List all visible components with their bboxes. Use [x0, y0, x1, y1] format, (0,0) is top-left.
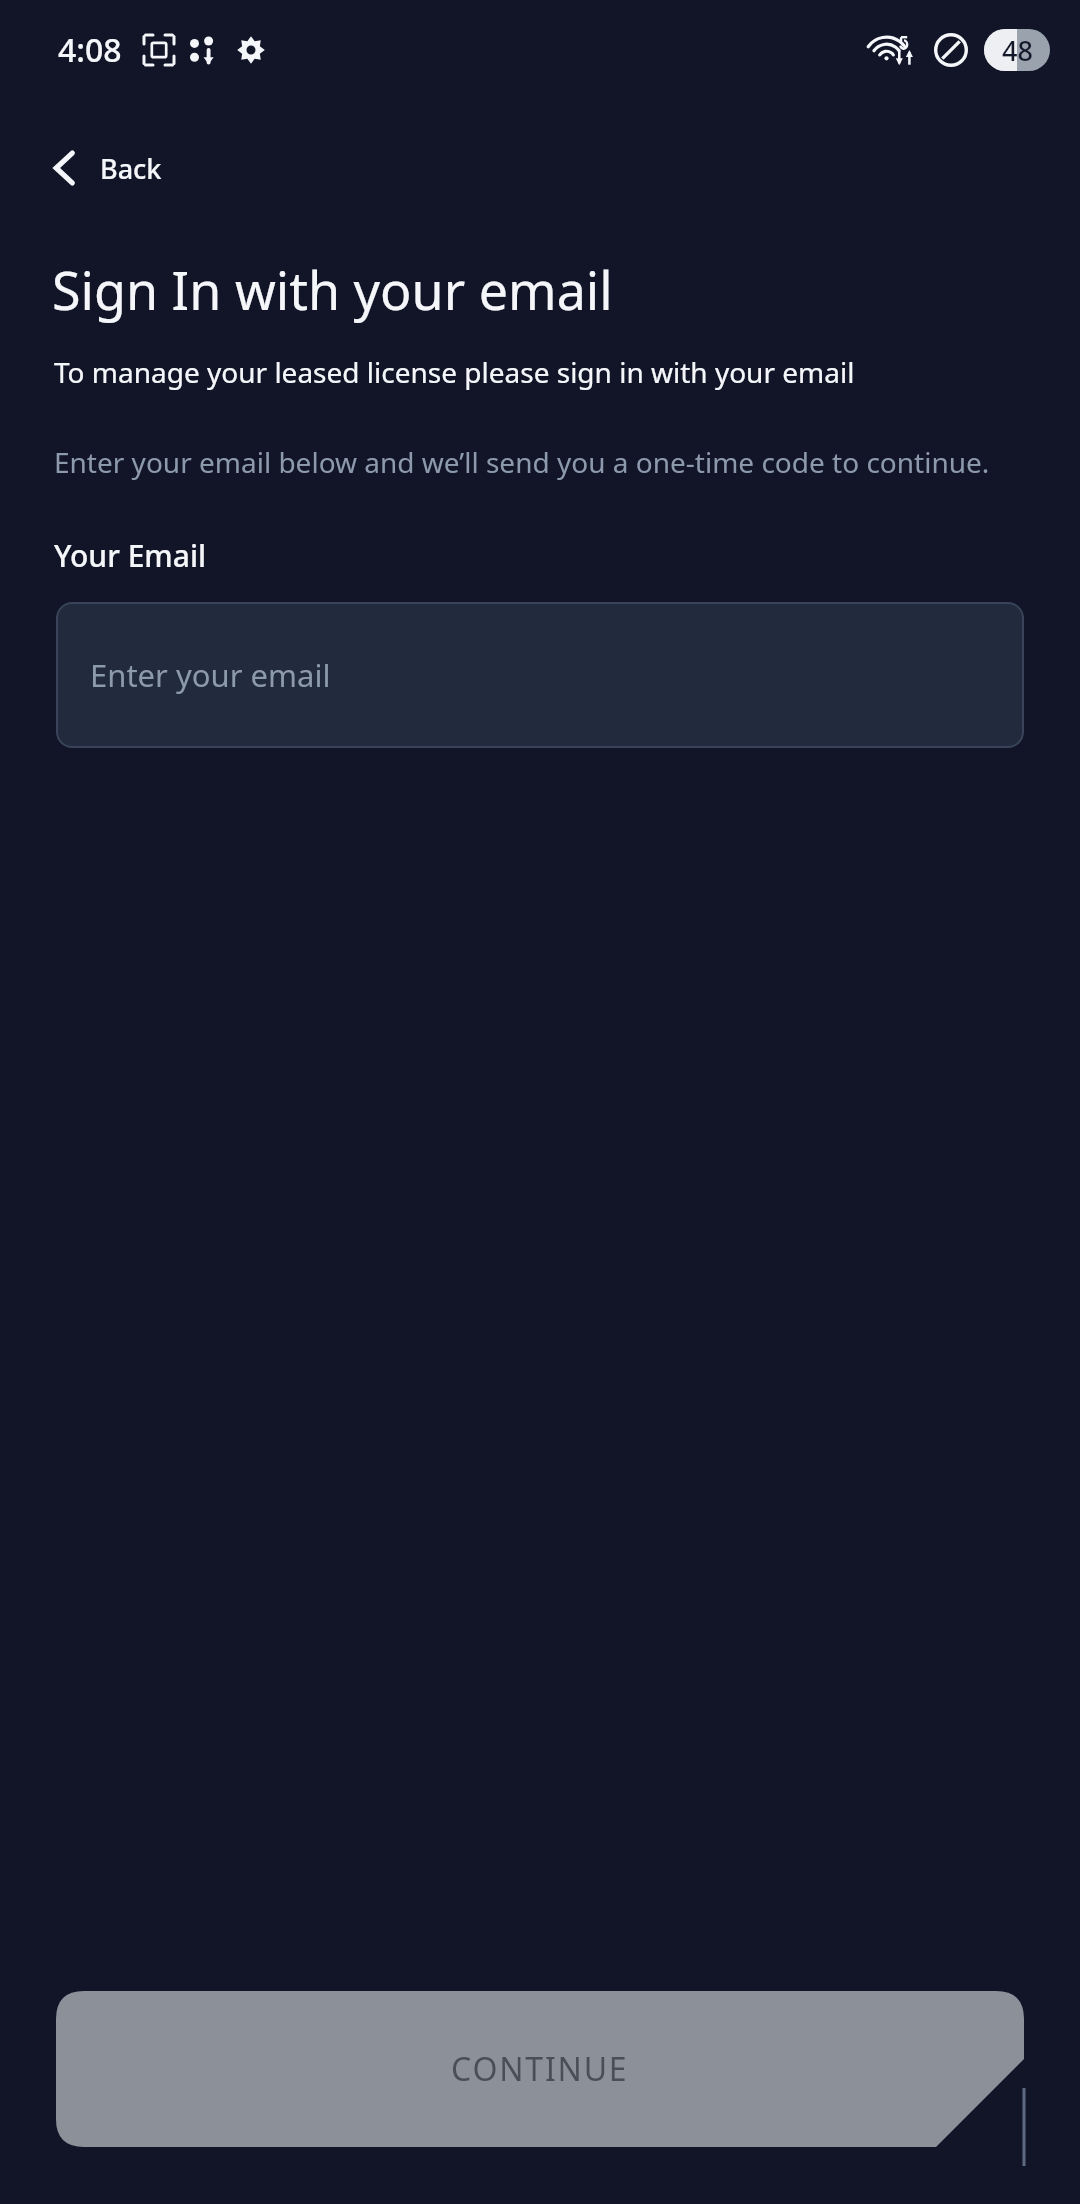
staticText: To manage your leased license please sig… [54, 353, 855, 391]
staticText: Enter your email [90, 654, 331, 696]
staticText: CONTINUE [451, 2047, 629, 2091]
button[interactable]: Back [40, 136, 174, 200]
button[interactable]: Enter your email [56, 602, 1024, 748]
staticText: Sign In with your email [52, 254, 613, 325]
staticText: Your Email [54, 535, 207, 576]
staticText: 4:08 [58, 28, 122, 72]
button[interactable]: CONTINUE [56, 1991, 1024, 2147]
staticText: Enter your email below and we’ll send yo… [54, 443, 990, 481]
staticText: 48 [1002, 32, 1033, 69]
staticText: Back [100, 150, 162, 187]
